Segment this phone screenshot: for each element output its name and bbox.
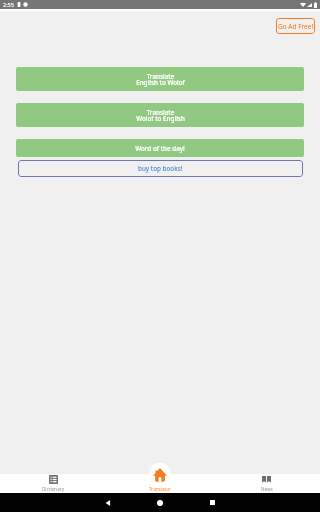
staticText: 2:55 [3, 1, 14, 8]
button[interactable]: buy top books! [18, 160, 303, 177]
staticText: Go Ad Free! [278, 22, 314, 31]
staticText: News [261, 486, 273, 492]
button[interactable]: Translator [140, 463, 180, 482]
staticText: Translate English to Wolof [136, 72, 185, 87]
staticText: Word of the day! [135, 144, 185, 153]
button[interactable]: Word of the day! [16, 139, 304, 157]
button[interactable]: Translate Wolof to English [16, 103, 304, 127]
button[interactable]: Dictionary [0, 474, 106, 493]
staticText: Translator [149, 486, 171, 492]
staticText: buy top books! [138, 164, 183, 173]
button[interactable]: Translate English to Wolof [16, 67, 304, 91]
button[interactable]: News [213, 474, 320, 493]
staticText: Dictionary [42, 486, 65, 492]
button[interactable]: Go Ad Free! [276, 18, 315, 34]
button[interactable]: Home [134, 493, 186, 512]
button[interactable]: Back [82, 493, 134, 512]
staticText: Translate Wolof to English [136, 108, 185, 123]
button[interactable]: Recents [186, 493, 238, 512]
